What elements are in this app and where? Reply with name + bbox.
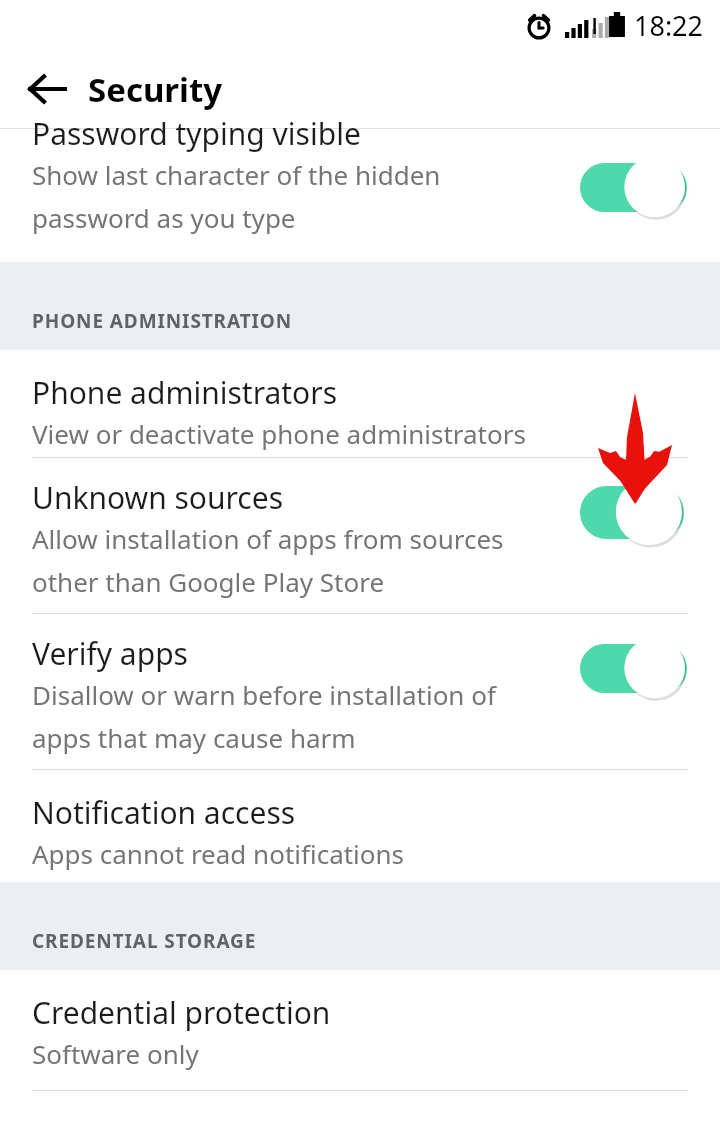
staticText: Software only: [32, 1036, 199, 1071]
button[interactable]: Notification access: [0, 770, 720, 882]
staticText: Password typing visible: [32, 113, 361, 154]
staticText: View or deactivate phone administrators: [32, 416, 526, 451]
staticText: Unknown sources: [32, 477, 284, 518]
button[interactable]: Back: [18, 60, 76, 118]
staticText: Allow installation of apps from sources …: [32, 521, 552, 599]
button[interactable]: Password typing visible: [0, 129, 720, 262]
staticText: Verify apps: [32, 633, 188, 674]
button[interactable]: Verify apps: [0, 614, 720, 769]
button[interactable]: Verify apps toggle: [580, 635, 687, 701]
staticText: Disallow or warn before installation of …: [32, 677, 552, 755]
staticText: Show last character of the hidden passwo…: [32, 157, 502, 235]
staticText: Security: [88, 67, 223, 112]
button[interactable]: Phone administrators: [0, 350, 720, 457]
staticText: Apps cannot read notifications: [32, 836, 405, 871]
staticText: CREDENTIAL STORAGE: [32, 928, 257, 954]
staticText: PHONE ADMINISTRATION: [32, 308, 293, 334]
staticText: Credential protection: [32, 992, 331, 1033]
button[interactable]: Unknown sources: [0, 458, 720, 613]
staticText: Phone administrators: [32, 372, 338, 413]
button[interactable]: Password typing visible toggle: [580, 154, 687, 220]
staticText: 18:22: [634, 7, 704, 44]
staticText: Notification access: [32, 792, 296, 833]
button[interactable]: Credential protection: [0, 970, 720, 1090]
button[interactable]: Unknown sources toggle: [580, 476, 684, 548]
